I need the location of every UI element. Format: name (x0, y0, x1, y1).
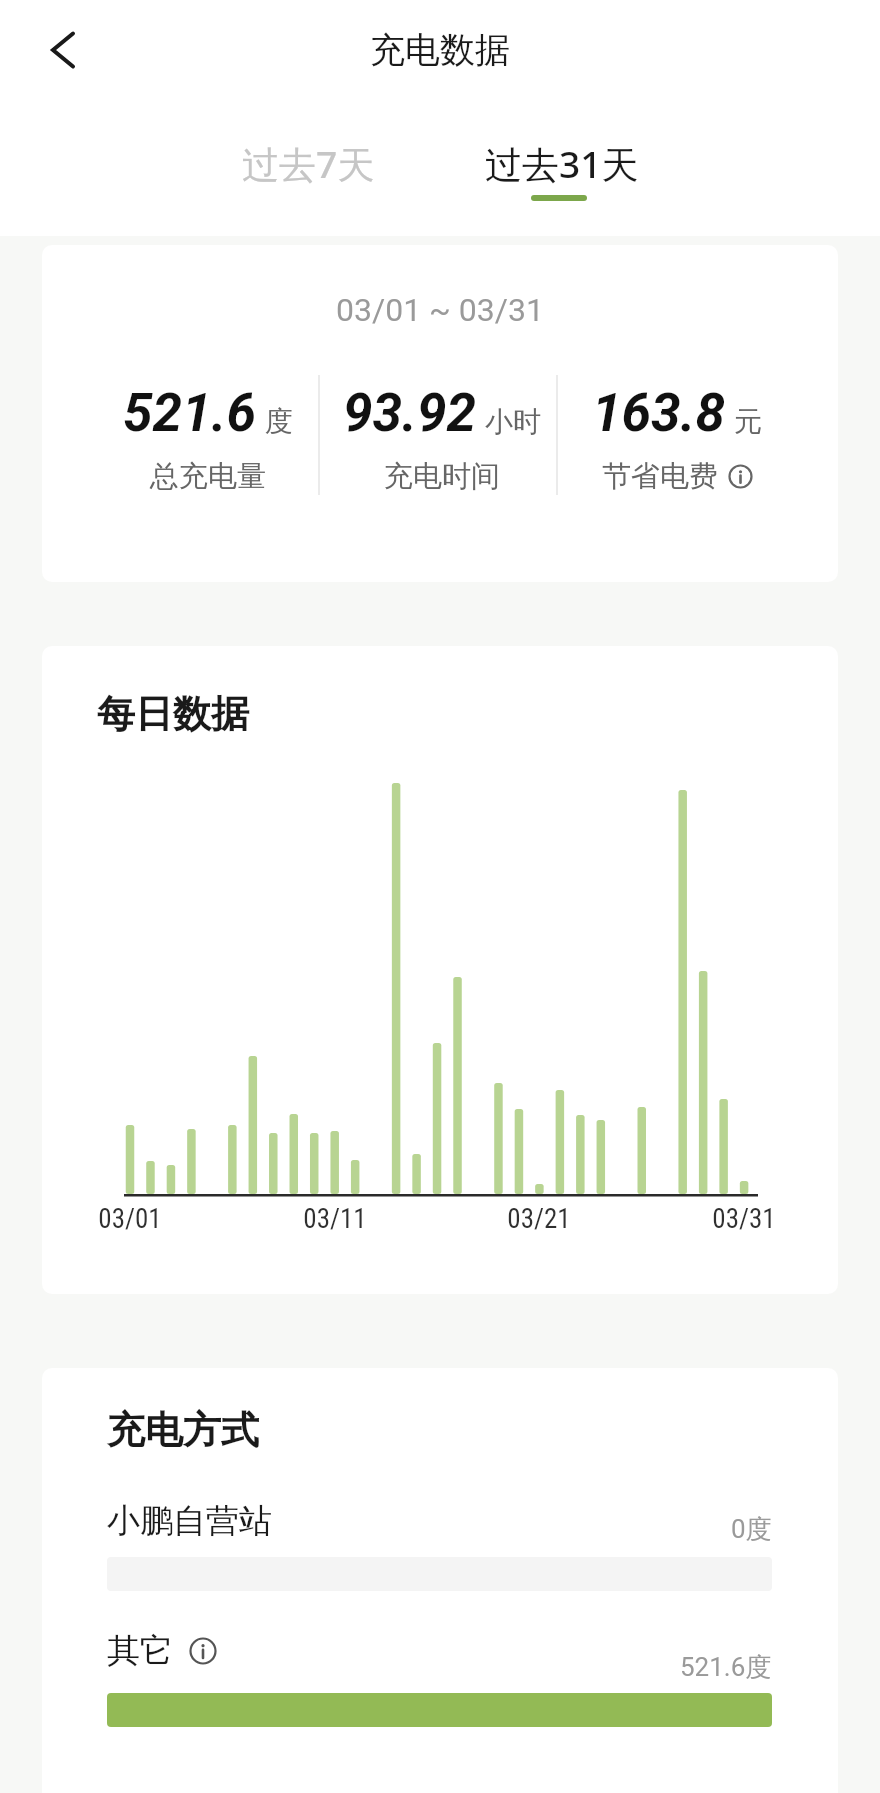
staticText: 小时 (485, 404, 541, 439)
staticText: 03/21 (507, 1203, 571, 1235)
staticText: 03/01 ~ 03/31 (336, 291, 544, 329)
staticText: 163.8 (592, 382, 725, 444)
staticText: 93.92 (343, 382, 476, 444)
staticText: 其它 (107, 1630, 173, 1672)
staticText: 节省电费 (602, 458, 718, 495)
staticText: 充电数据 (370, 28, 510, 72)
staticText: 充电方式 (107, 1406, 259, 1454)
staticText: 03/01 (98, 1203, 162, 1235)
staticText: 过去31天 (485, 138, 639, 189)
staticText: 03/11 (303, 1203, 367, 1235)
button[interactable]: 过去7天 (242, 138, 375, 189)
staticText: 521.6 (123, 382, 256, 444)
staticText: 元 (734, 404, 762, 439)
staticText: 0度 (731, 1513, 772, 1546)
button[interactable] (38, 24, 88, 76)
staticText: 总充电量 (150, 458, 266, 495)
staticText: 小鹏自营站 (107, 1500, 272, 1542)
staticText: 充电时间 (384, 458, 500, 495)
button[interactable]: 过去31天 (485, 138, 639, 189)
staticText: 度 (265, 404, 293, 439)
staticText: 每日数据 (97, 690, 249, 738)
staticText: 03/31 (712, 1203, 776, 1235)
staticText: 521.6度 (680, 1651, 772, 1684)
staticText: 过去7天 (242, 138, 375, 189)
